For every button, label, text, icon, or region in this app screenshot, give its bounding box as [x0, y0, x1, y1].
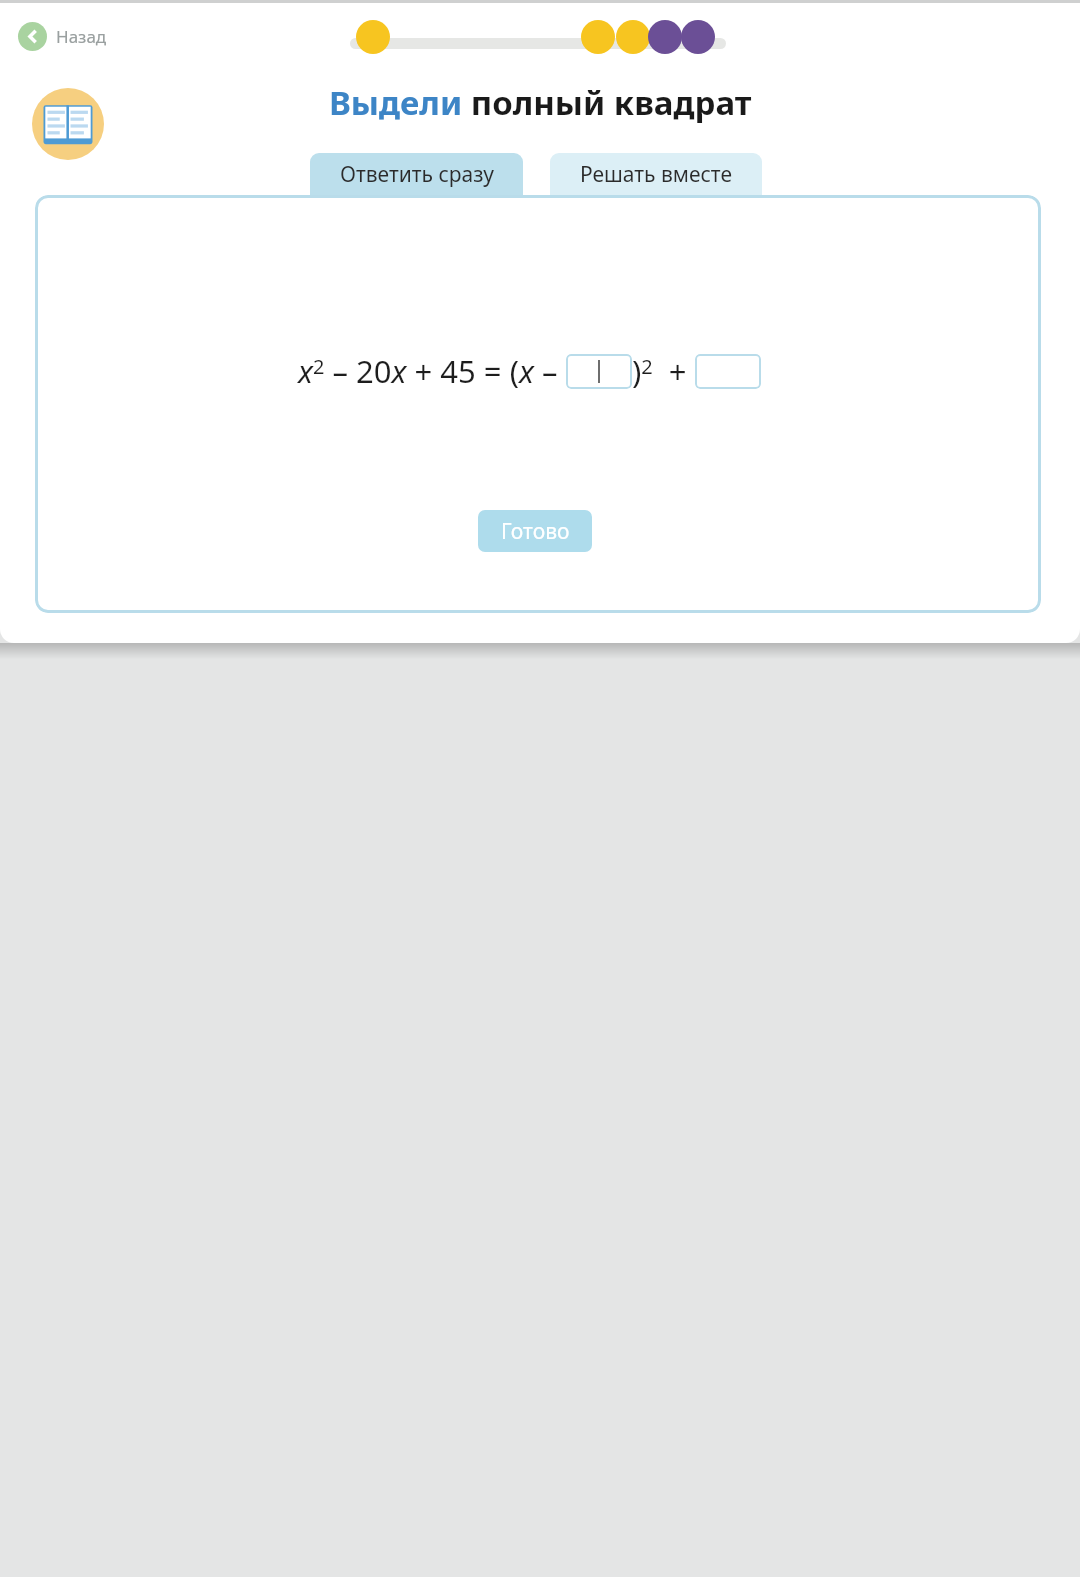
button[interactable]: [695, 354, 761, 389]
staticText: Ответить сразу: [340, 160, 494, 189]
staticText: Готово: [501, 517, 570, 546]
button[interactable]: [566, 354, 632, 389]
staticText: )2 +: [632, 350, 695, 392]
button[interactable]: Готово: [478, 510, 592, 552]
other: Учебник: [32, 88, 104, 160]
staticText: x2 – 20x + 45 = (x –: [298, 350, 566, 392]
button[interactable]: Ответить сразу: [310, 153, 523, 195]
staticText: Решать вместе: [580, 160, 732, 189]
staticText: Назад: [56, 25, 107, 48]
button[interactable]: Решать вместе: [550, 153, 762, 195]
staticText: Выдели полный квадрат: [329, 80, 752, 125]
button[interactable]: Назад: [14, 18, 111, 55]
